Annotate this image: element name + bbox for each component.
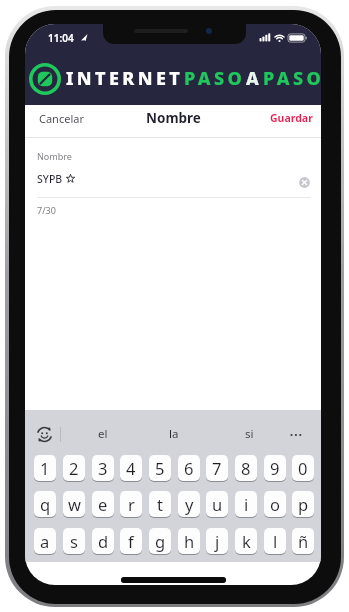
staticText: q bbox=[40, 493, 51, 515]
button[interactable]: k bbox=[235, 528, 257, 554]
staticText: el bbox=[98, 426, 108, 442]
staticText: Cancelar bbox=[39, 111, 84, 126]
staticText: ñ bbox=[298, 530, 309, 552]
staticText: Guardar bbox=[270, 111, 313, 125]
staticText: si bbox=[245, 426, 254, 442]
staticText: u bbox=[212, 493, 223, 515]
button[interactable]: p bbox=[292, 491, 314, 517]
button[interactable] bbox=[33, 422, 57, 446]
button[interactable]: 9 bbox=[264, 455, 286, 481]
staticText: j bbox=[215, 530, 220, 552]
button[interactable]: a bbox=[34, 528, 56, 554]
button[interactable]: y bbox=[178, 491, 200, 517]
button[interactable]: e bbox=[92, 491, 114, 517]
staticText: 4 bbox=[126, 457, 136, 479]
button[interactable]: d bbox=[92, 528, 114, 554]
button[interactable]: Cancelar bbox=[33, 105, 103, 131]
button[interactable]: j bbox=[206, 528, 228, 554]
staticText: 11:04 bbox=[48, 31, 74, 45]
button[interactable]: t bbox=[149, 491, 171, 517]
staticText: PASO bbox=[184, 66, 246, 91]
staticText: 5 bbox=[155, 457, 165, 479]
button[interactable]: 6 bbox=[178, 455, 200, 481]
button[interactable]: r bbox=[120, 491, 142, 517]
button[interactable]: w bbox=[63, 491, 85, 517]
staticText: r bbox=[128, 493, 135, 515]
staticText: s bbox=[70, 530, 78, 552]
button[interactable]: 0 bbox=[292, 455, 314, 481]
staticText: y bbox=[185, 493, 194, 515]
button[interactable]: 7 bbox=[206, 455, 228, 481]
staticText: a bbox=[40, 530, 50, 552]
staticText: g bbox=[155, 530, 166, 552]
button[interactable]: q bbox=[34, 491, 56, 517]
staticText: i bbox=[244, 493, 249, 515]
button[interactable]: 2 bbox=[63, 455, 85, 481]
staticText: INTERNET bbox=[66, 66, 184, 91]
staticText: 7 bbox=[212, 457, 222, 479]
staticText: 9 bbox=[270, 457, 280, 479]
button[interactable] bbox=[293, 171, 316, 194]
button[interactable]: si bbox=[219, 424, 279, 444]
staticText: la bbox=[169, 426, 179, 442]
staticText: 8 bbox=[241, 457, 251, 479]
button[interactable]: 8 bbox=[235, 455, 257, 481]
staticText: 1 bbox=[40, 457, 50, 479]
staticText: d bbox=[98, 530, 109, 552]
staticText: k bbox=[242, 530, 251, 552]
button[interactable]: u bbox=[206, 491, 228, 517]
button[interactable]: f bbox=[120, 528, 142, 554]
button[interactable]: Guardar bbox=[270, 105, 321, 131]
button[interactable]: 5 bbox=[149, 455, 171, 481]
staticText: SYPB bbox=[37, 172, 63, 186]
button[interactable]: 1 bbox=[34, 455, 56, 481]
staticText: w bbox=[68, 493, 81, 515]
button[interactable]: ñ bbox=[292, 528, 314, 554]
staticText: t bbox=[157, 493, 163, 515]
staticText: Nombre bbox=[37, 150, 72, 162]
staticText: 6 bbox=[184, 457, 194, 479]
button[interactable]: s bbox=[63, 528, 85, 554]
button[interactable]: 3 bbox=[92, 455, 114, 481]
staticText: p bbox=[298, 493, 309, 515]
staticText: PASO bbox=[263, 66, 321, 91]
button[interactable]: el bbox=[73, 424, 133, 444]
button[interactable]: la bbox=[144, 424, 204, 444]
staticText: h bbox=[184, 530, 195, 552]
button[interactable]: h bbox=[178, 528, 200, 554]
staticText: 7/30 bbox=[37, 204, 56, 216]
staticText: l bbox=[273, 530, 278, 552]
staticText: Nombre bbox=[146, 109, 201, 127]
staticText: 2 bbox=[69, 457, 79, 479]
staticText: A bbox=[246, 66, 263, 91]
button[interactable]: o bbox=[264, 491, 286, 517]
button[interactable]: g bbox=[149, 528, 171, 554]
staticText: f bbox=[128, 530, 134, 552]
staticText: 3 bbox=[98, 457, 108, 479]
staticText: 0 bbox=[298, 457, 308, 479]
button[interactable]: l bbox=[264, 528, 286, 554]
button[interactable]: i bbox=[235, 491, 257, 517]
staticText: o bbox=[270, 493, 280, 515]
staticText: e bbox=[98, 493, 108, 515]
button[interactable]: 4 bbox=[120, 455, 142, 481]
